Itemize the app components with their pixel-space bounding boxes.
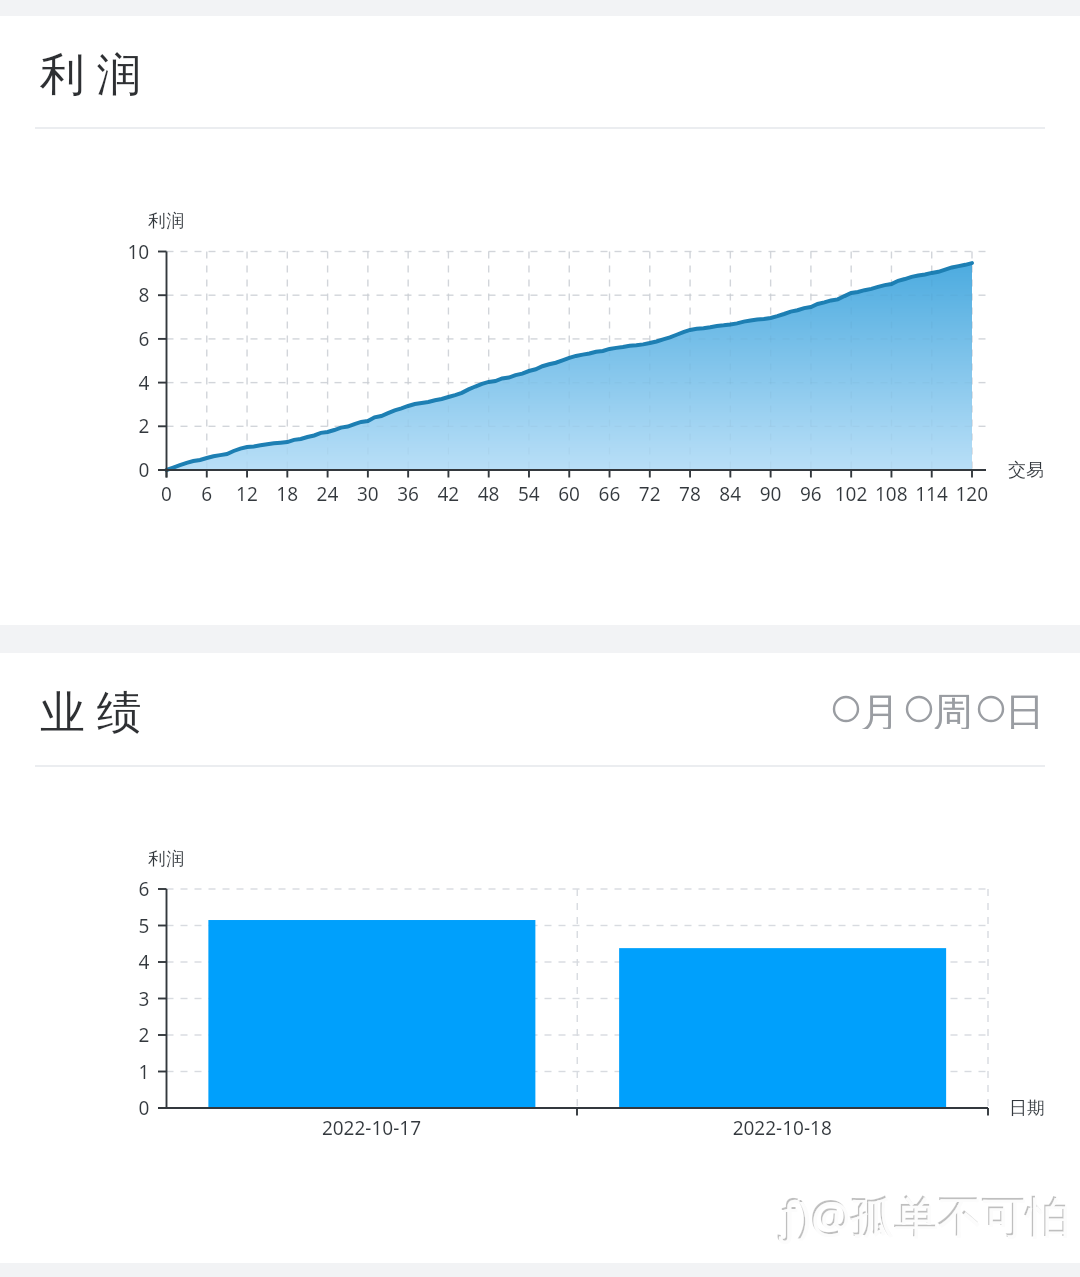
staticText: 日 — [1005, 687, 1045, 729]
button[interactable]: 日 — [978, 688, 1045, 730]
staticText: 利 润 — [40, 42, 142, 103]
staticText: 月 — [860, 687, 900, 729]
staticText: 业 绩 — [40, 680, 142, 741]
button[interactable]: 月 — [833, 688, 900, 730]
button[interactable]: 利 润 — [24, 35, 164, 111]
button[interactable]: 周 — [906, 688, 973, 730]
staticText: 周 — [933, 687, 973, 729]
button[interactable]: 业 绩 — [24, 673, 164, 749]
